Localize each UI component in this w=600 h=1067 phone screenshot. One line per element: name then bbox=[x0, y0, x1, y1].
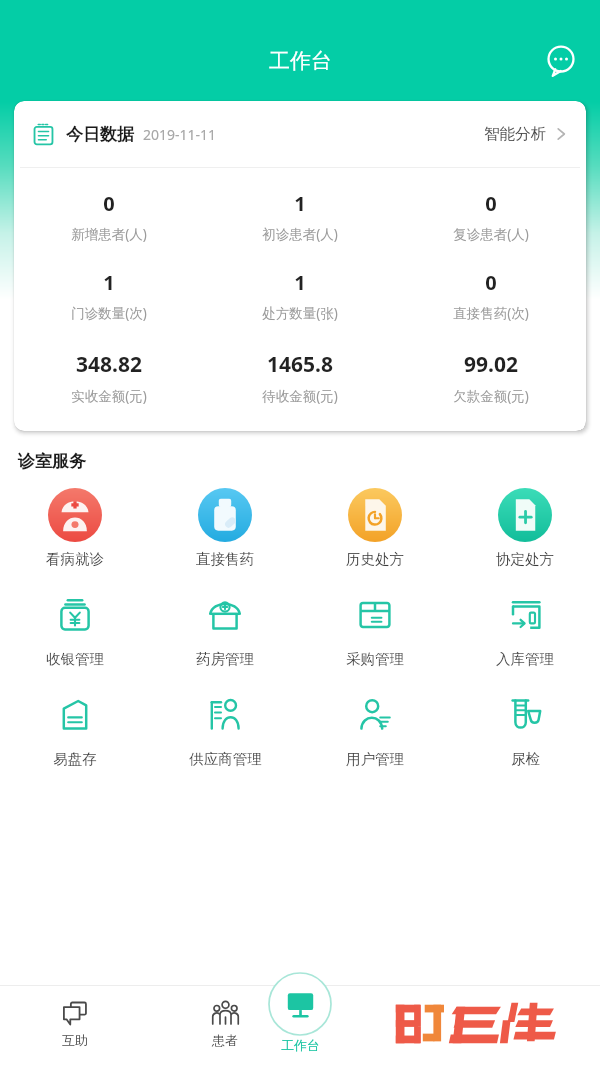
staticText: 直接售药 bbox=[196, 550, 254, 568]
staticText: 0 bbox=[103, 190, 115, 217]
button[interactable]: 历史处方 bbox=[300, 486, 450, 568]
button[interactable]: 收银管理 bbox=[0, 586, 150, 668]
staticText: 1 bbox=[294, 190, 306, 217]
staticText: 初诊患者(人) bbox=[262, 225, 338, 243]
staticText: 尿检 bbox=[511, 750, 540, 768]
staticText: 供应商管理 bbox=[189, 750, 262, 768]
staticText: 入库管理 bbox=[496, 650, 554, 668]
button[interactable]: 今日数据 bbox=[14, 101, 586, 167]
staticText: 1 bbox=[103, 269, 115, 296]
button[interactable]: 直接售药 bbox=[150, 486, 300, 568]
staticText: 药房管理 bbox=[196, 650, 254, 668]
button[interactable]: 工作台 bbox=[268, 972, 332, 1053]
button[interactable]: 入库管理 bbox=[450, 586, 600, 668]
staticText: 患者 bbox=[212, 1032, 238, 1048]
staticText: 诊室服务 bbox=[18, 451, 86, 472]
staticText: 智能分析 bbox=[484, 124, 546, 144]
staticText: 复诊患者(人) bbox=[453, 225, 529, 243]
staticText: 门诊数量(次) bbox=[71, 304, 147, 322]
staticText: 易盘存 bbox=[53, 750, 97, 768]
button[interactable]: 药房管理 bbox=[150, 586, 300, 668]
staticText: 看病就诊 bbox=[46, 550, 104, 568]
button[interactable]: 协定处方 bbox=[450, 486, 600, 568]
staticText: 工作台 bbox=[281, 1037, 320, 1053]
staticText: 协定处方 bbox=[496, 550, 554, 568]
staticText: 工作台 bbox=[269, 48, 332, 74]
button[interactable]: 尿检 bbox=[450, 686, 600, 768]
staticText: 实收金额(元) bbox=[71, 387, 147, 405]
button[interactable]: 用户管理 bbox=[300, 686, 450, 768]
staticText: 欠款金额(元) bbox=[453, 387, 529, 405]
staticText: 互助 bbox=[62, 1032, 88, 1048]
staticText: 用户管理 bbox=[346, 750, 404, 768]
button[interactable]: 供应商管理 bbox=[150, 686, 300, 768]
button[interactable]: 互助 bbox=[0, 985, 150, 1067]
staticText: 历史处方 bbox=[346, 550, 404, 568]
staticText: 处方数量(张) bbox=[262, 304, 338, 322]
staticText: 今日数据 bbox=[66, 124, 134, 145]
staticText: 0 bbox=[485, 190, 497, 217]
button[interactable]: 采购管理 bbox=[300, 586, 450, 668]
staticText: 采购管理 bbox=[346, 650, 404, 668]
button[interactable]: 看病就诊 bbox=[0, 486, 150, 568]
staticText: 0 bbox=[485, 269, 497, 296]
staticText: 99.02 bbox=[464, 350, 518, 379]
button[interactable]: Messages bbox=[538, 38, 584, 84]
staticText: 2019-11-11 bbox=[143, 125, 217, 144]
staticText: 待收金额(元) bbox=[262, 387, 338, 405]
staticText: 1465.8 bbox=[267, 350, 333, 379]
button[interactable]: 易盘存 bbox=[0, 686, 150, 768]
staticText: 348.82 bbox=[76, 350, 142, 379]
staticText: 直接售药(次) bbox=[453, 304, 529, 322]
staticText: 收银管理 bbox=[46, 650, 104, 668]
button[interactable]: 患者 bbox=[150, 985, 300, 1067]
staticText: 新增患者(人) bbox=[71, 225, 147, 243]
staticText: 1 bbox=[294, 269, 306, 296]
